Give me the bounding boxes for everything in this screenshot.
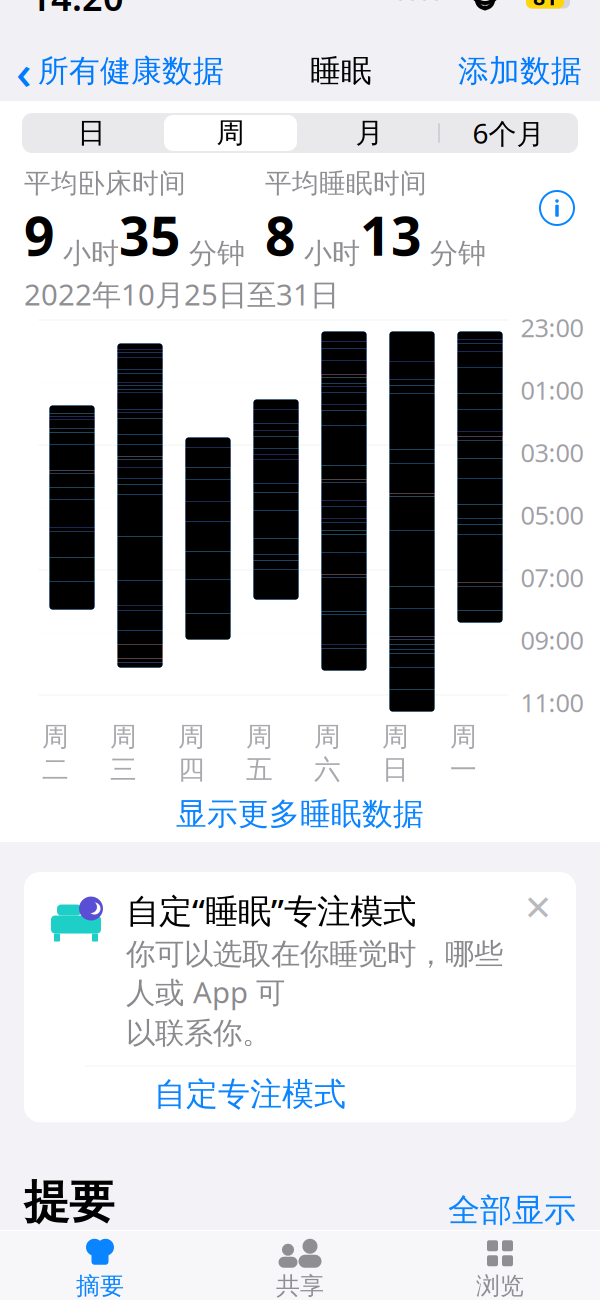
staticText: 自定“睡眠”专注模式	[126, 888, 416, 932]
button[interactable]: 日	[22, 113, 161, 153]
button[interactable]: 6个月	[439, 113, 578, 153]
staticText: 07:00	[520, 561, 583, 594]
staticText: 周	[216, 116, 244, 150]
button[interactable]: 添加数据	[458, 52, 600, 90]
staticText: 81	[533, 0, 557, 11]
staticText: 14:20	[30, 0, 124, 21]
staticText: 周六	[314, 720, 341, 786]
button[interactable]: 更多信息	[538, 167, 576, 227]
staticText: 周五	[246, 720, 273, 786]
staticText: ‹	[16, 39, 32, 103]
button[interactable]: 摘要	[0, 1237, 200, 1300]
staticText: 01:00	[520, 373, 583, 407]
staticText: 浏览	[476, 1271, 524, 1300]
staticText: 以联系你。	[126, 1015, 271, 1051]
staticText: 周一	[450, 720, 477, 786]
button[interactable]: 共享	[200, 1237, 400, 1300]
staticText: 09:00	[520, 623, 583, 657]
staticText: 月	[355, 116, 383, 150]
staticText: 你可以选取在你睡觉时，哪些人或 App 可	[126, 936, 503, 1011]
staticText: 提要	[24, 1174, 114, 1230]
staticText: 2022年10月25日至31日	[24, 275, 339, 314]
button[interactable]: 全部显示	[448, 1191, 576, 1230]
staticText: 平均睡眠时间	[265, 167, 427, 200]
staticText: 分钟	[422, 236, 486, 271]
staticText: 05:00	[520, 498, 583, 532]
staticText: 9	[24, 200, 55, 271]
staticText: 所有健康数据	[38, 52, 224, 90]
staticText: 周三	[110, 720, 137, 786]
staticText: 11:00	[520, 686, 583, 719]
staticText: 23:00	[520, 311, 583, 344]
staticText: 全部显示	[448, 1191, 576, 1230]
staticText: 显示更多睡眠数据	[176, 795, 424, 833]
staticText: 平均卧床时间	[24, 167, 186, 200]
staticText: 周二	[42, 720, 69, 786]
button[interactable]: 自定专注模式	[24, 1066, 576, 1122]
button[interactable]: 周	[161, 113, 300, 153]
staticText: 共享	[276, 1271, 324, 1300]
staticText: 8	[265, 200, 296, 271]
staticText: 35	[119, 200, 181, 271]
staticText: 03:00	[520, 436, 583, 469]
button[interactable]: 浏览	[400, 1237, 600, 1300]
staticText: 周日	[382, 720, 409, 786]
staticText: 小时	[55, 236, 119, 271]
staticText: 摘要	[76, 1271, 124, 1300]
staticText: 添加数据	[458, 52, 582, 90]
staticText: 周四	[178, 720, 205, 786]
button[interactable]: 月	[300, 113, 439, 153]
staticText: 分钟	[181, 236, 245, 271]
staticText: 睡眠	[310, 52, 372, 90]
button[interactable]: 显示更多睡眠数据	[0, 786, 600, 842]
staticText: 6个月	[472, 114, 544, 152]
button[interactable]: ‹	[0, 39, 224, 103]
staticText: ✕	[523, 888, 552, 928]
staticText: 自定专注模式	[154, 1075, 346, 1114]
staticText: 小时	[296, 236, 360, 271]
button[interactable]: 关闭	[518, 888, 558, 928]
staticText: 13	[360, 200, 422, 271]
staticText: 日	[77, 116, 105, 150]
